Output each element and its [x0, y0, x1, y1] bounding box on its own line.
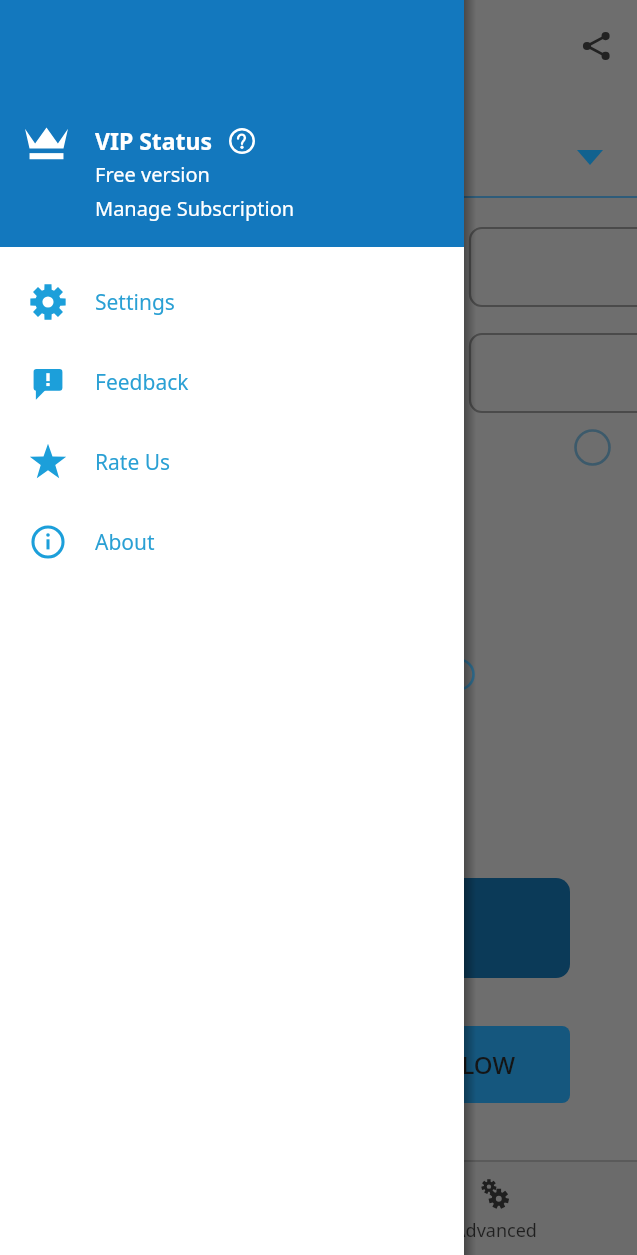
staticText: Settings — [95, 288, 175, 317]
button[interactable]: Rate Us — [0, 422, 464, 502]
staticText: Advanced — [454, 1218, 537, 1243]
staticText: About — [95, 528, 155, 557]
staticText: ALLOW — [433, 1048, 516, 1081]
staticText: Rate Us — [95, 448, 171, 477]
staticText: Manage Subscription — [95, 195, 295, 222]
button[interactable]: Manage Subscription — [95, 195, 295, 222]
button[interactable] — [368, 878, 570, 978]
staticText: Free version — [95, 161, 210, 188]
button[interactable]: ALLOW — [378, 1026, 570, 1103]
button[interactable]: Share — [572, 22, 620, 70]
staticText: Feedback — [95, 368, 189, 397]
button[interactable]: Help about VIP Status — [227, 126, 257, 156]
button[interactable]: About — [0, 502, 464, 582]
button[interactable]: Advanced — [425, 1176, 565, 1243]
button[interactable]: Expand — [570, 142, 610, 172]
button[interactable]: Feedback — [0, 342, 464, 422]
staticText: VIP Status — [95, 125, 213, 156]
button[interactable]: Settings — [0, 262, 464, 342]
